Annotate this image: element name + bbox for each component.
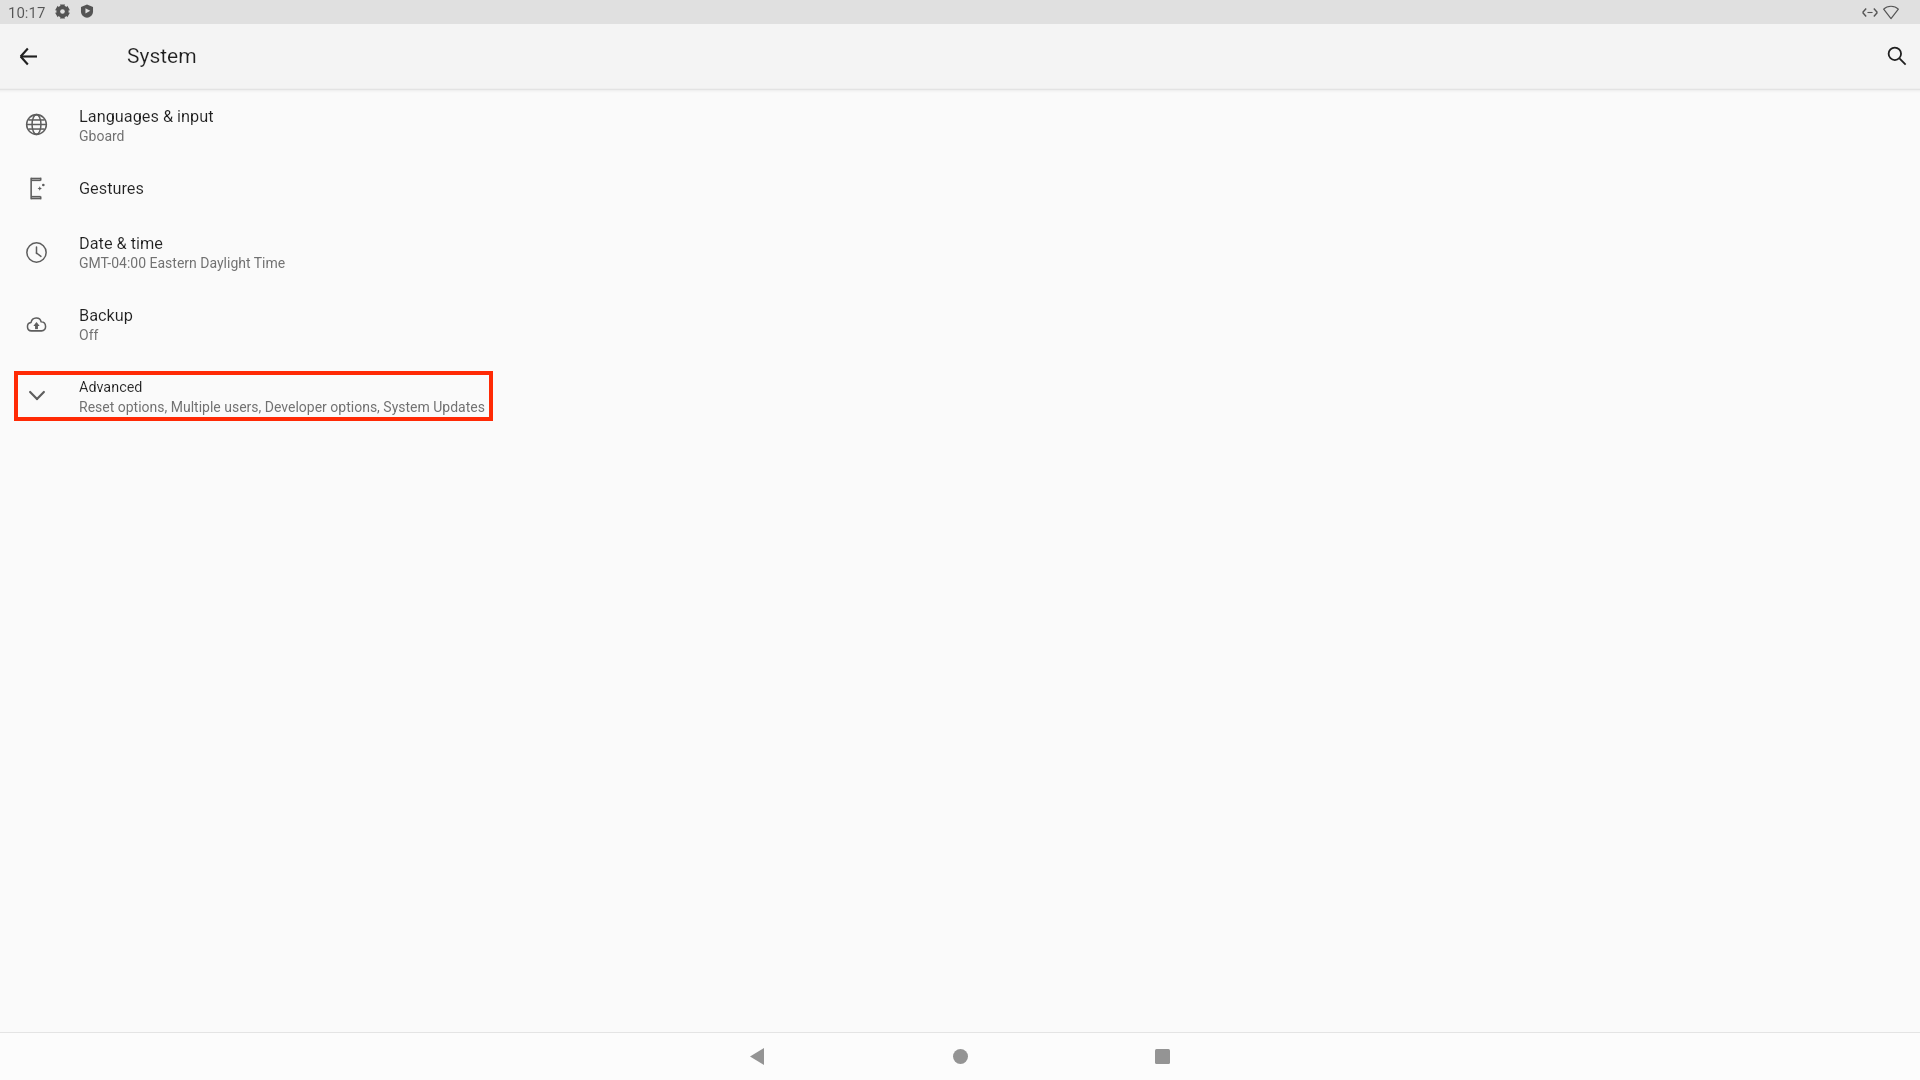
button[interactable]: Backup bbox=[0, 289, 1920, 360]
button[interactable]: Home bbox=[936, 1032, 984, 1080]
button[interactable]: Gestures bbox=[0, 161, 1920, 215]
staticText: Reset options, Multiple users, Developer… bbox=[79, 399, 485, 415]
button[interactable]: Search settings bbox=[1878, 37, 1916, 75]
staticText: Backup bbox=[79, 306, 133, 325]
button[interactable]: Languages & input bbox=[0, 89, 1920, 161]
button[interactable]: Date & time bbox=[0, 215, 1920, 289]
button[interactable]: Recent apps bbox=[1138, 1032, 1186, 1080]
staticText: Advanced bbox=[79, 379, 143, 396]
staticText: GMT-04:00 Eastern Daylight Time bbox=[79, 255, 286, 271]
staticText: Off bbox=[79, 327, 99, 343]
staticText: Date & time bbox=[79, 234, 163, 253]
staticText: Gestures bbox=[79, 179, 144, 198]
button[interactable]: Advanced bbox=[0, 361, 1920, 432]
staticText: System bbox=[127, 44, 197, 69]
staticText: Languages & input bbox=[79, 107, 214, 126]
button[interactable]: Back bbox=[733, 1032, 781, 1080]
staticText: Gboard bbox=[79, 128, 125, 144]
button[interactable]: Navigate up bbox=[10, 38, 46, 74]
staticText: 10:17 bbox=[8, 4, 46, 22]
